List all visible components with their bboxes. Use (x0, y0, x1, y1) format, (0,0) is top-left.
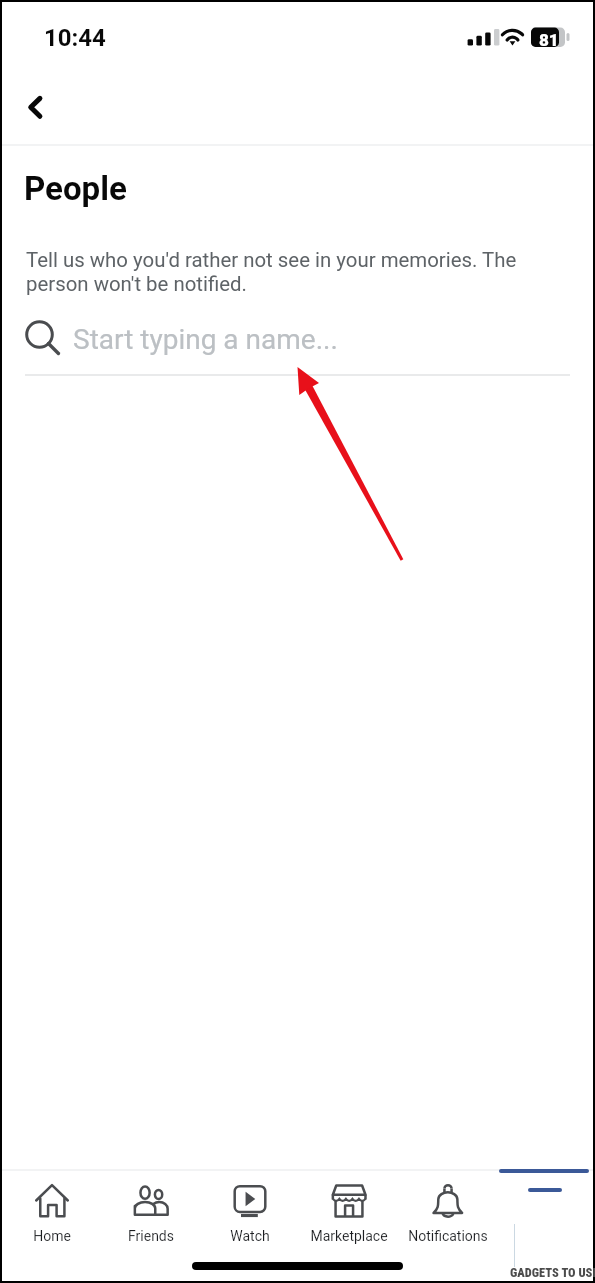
button[interactable]: Home (2, 1171, 101, 1244)
staticText: People (24, 169, 127, 208)
staticText: GADGETS TO USE (510, 1265, 595, 1280)
button[interactable]: Start typing a name... (2, 314, 593, 364)
staticText: Notifications (408, 1228, 488, 1244)
staticText: Home (33, 1228, 71, 1244)
staticText: 10:44 (44, 24, 106, 52)
button[interactable]: Watch (200, 1171, 299, 1244)
staticText: 81 (539, 30, 559, 50)
button[interactable]: Friends (101, 1171, 200, 1244)
staticText: Start typing a name... (73, 323, 338, 356)
staticText: Tell us who you'd rather not see in your… (26, 248, 538, 296)
button[interactable]: Notifications (398, 1171, 497, 1244)
staticText: Watch (230, 1228, 270, 1244)
button[interactable]: Back (10, 80, 66, 136)
staticText: Friends (128, 1228, 174, 1244)
staticText: Marketplace (310, 1228, 388, 1244)
button[interactable]: Marketplace (299, 1171, 398, 1244)
